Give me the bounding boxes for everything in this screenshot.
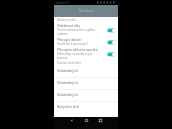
staticText: Uživatelský úč (57, 69, 79, 73)
button[interactable]: Přístup k datům (54, 36, 118, 47)
staticText: Povolit zobrazení účtu v aplikac (57, 28, 95, 32)
staticText: Sdílet údaje s kontakty a sync. (57, 52, 94, 56)
button[interactable]: Nový účet přid (54, 102, 118, 113)
button[interactable]: Back (66, 117, 76, 123)
button[interactable]: Toggle (107, 38, 116, 45)
button[interactable]: Recents (95, 117, 105, 123)
button[interactable]: Toggle (107, 26, 116, 33)
staticText: Seznam všech účtů (57, 61, 82, 65)
staticText: Povolit číst a upravovat d (57, 42, 88, 46)
button[interactable]: Uživatelský úč (54, 90, 118, 101)
staticText: Uživatelský úč (57, 81, 79, 85)
button[interactable]: Uživatelský úč (54, 65, 118, 77)
staticText: Android 6.0 (56, 1, 71, 5)
staticText: Viditelnost účtu (57, 24, 81, 28)
staticText: Přístup k datům (57, 38, 81, 42)
staticText: Nastavení (79, 9, 94, 13)
staticText: Uživatelský úč (57, 93, 79, 97)
button[interactable]: Přístup ke sdílení a synchro (54, 47, 118, 60)
button[interactable]: Home (81, 117, 91, 123)
staticText: automat. (57, 56, 69, 60)
button[interactable]: Uživatelský úč (54, 78, 118, 89)
staticText: Přístup ke sdílení a synchro (57, 48, 98, 52)
staticText: ostatním (57, 32, 68, 36)
staticText: Nastavení účtu (57, 18, 76, 22)
staticText: Nový účet přid (57, 105, 79, 109)
button[interactable]: Viditelnost účtu (54, 23, 118, 36)
button[interactable]: Toggle (107, 50, 116, 57)
